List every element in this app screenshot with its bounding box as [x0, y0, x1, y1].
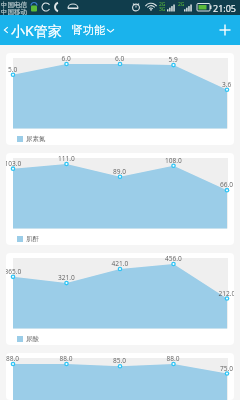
button[interactable]: Add [210, 15, 240, 45]
staticText: 小K管家 [11, 21, 62, 40]
button[interactable]: 尿酸 [6, 253, 234, 345]
button[interactable]: 尿素氮 [6, 53, 234, 145]
staticText: 肾功能 [72, 23, 105, 37]
button[interactable]: 小K管家 [2, 15, 62, 45]
button[interactable]: 肾功能 [72, 15, 114, 45]
staticText: 尿酸 [26, 335, 39, 343]
button[interactable]: 肾小球 [6, 353, 234, 400]
button[interactable]: 肌酐 [6, 153, 234, 245]
staticText: 肌酐 [26, 235, 39, 243]
staticText: 尿素氮 [26, 135, 46, 143]
